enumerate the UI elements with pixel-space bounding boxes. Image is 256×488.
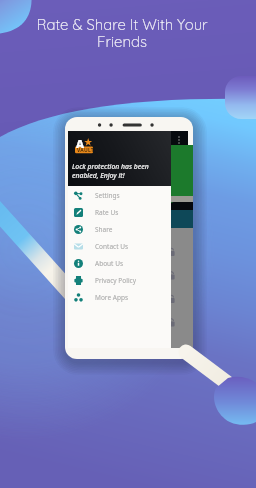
staticText: VAULT (77, 147, 94, 154)
button[interactable]: Rate Us (68, 204, 171, 221)
staticText: Settings (95, 191, 120, 200)
staticText: More Apps (95, 293, 129, 302)
staticText: Share (95, 225, 113, 234)
staticText: Privacy Policy (95, 276, 137, 285)
staticText: Lock protection has been enabled, Enjoy … (72, 162, 149, 180)
staticText: Rate Us (95, 208, 119, 217)
staticText: A (76, 136, 84, 151)
staticText: Rate & Share It With Your Friends (36, 15, 208, 50)
button[interactable]: Contact Us (68, 238, 171, 255)
button[interactable]: Privacy Policy (68, 272, 171, 289)
staticText: About Us (95, 259, 124, 268)
button[interactable]: Share (68, 221, 171, 238)
button[interactable]: About Us (68, 255, 171, 272)
staticText: Contact Us (95, 242, 129, 251)
button[interactable]: Settings (68, 187, 171, 204)
button[interactable]: More Apps (68, 289, 171, 306)
